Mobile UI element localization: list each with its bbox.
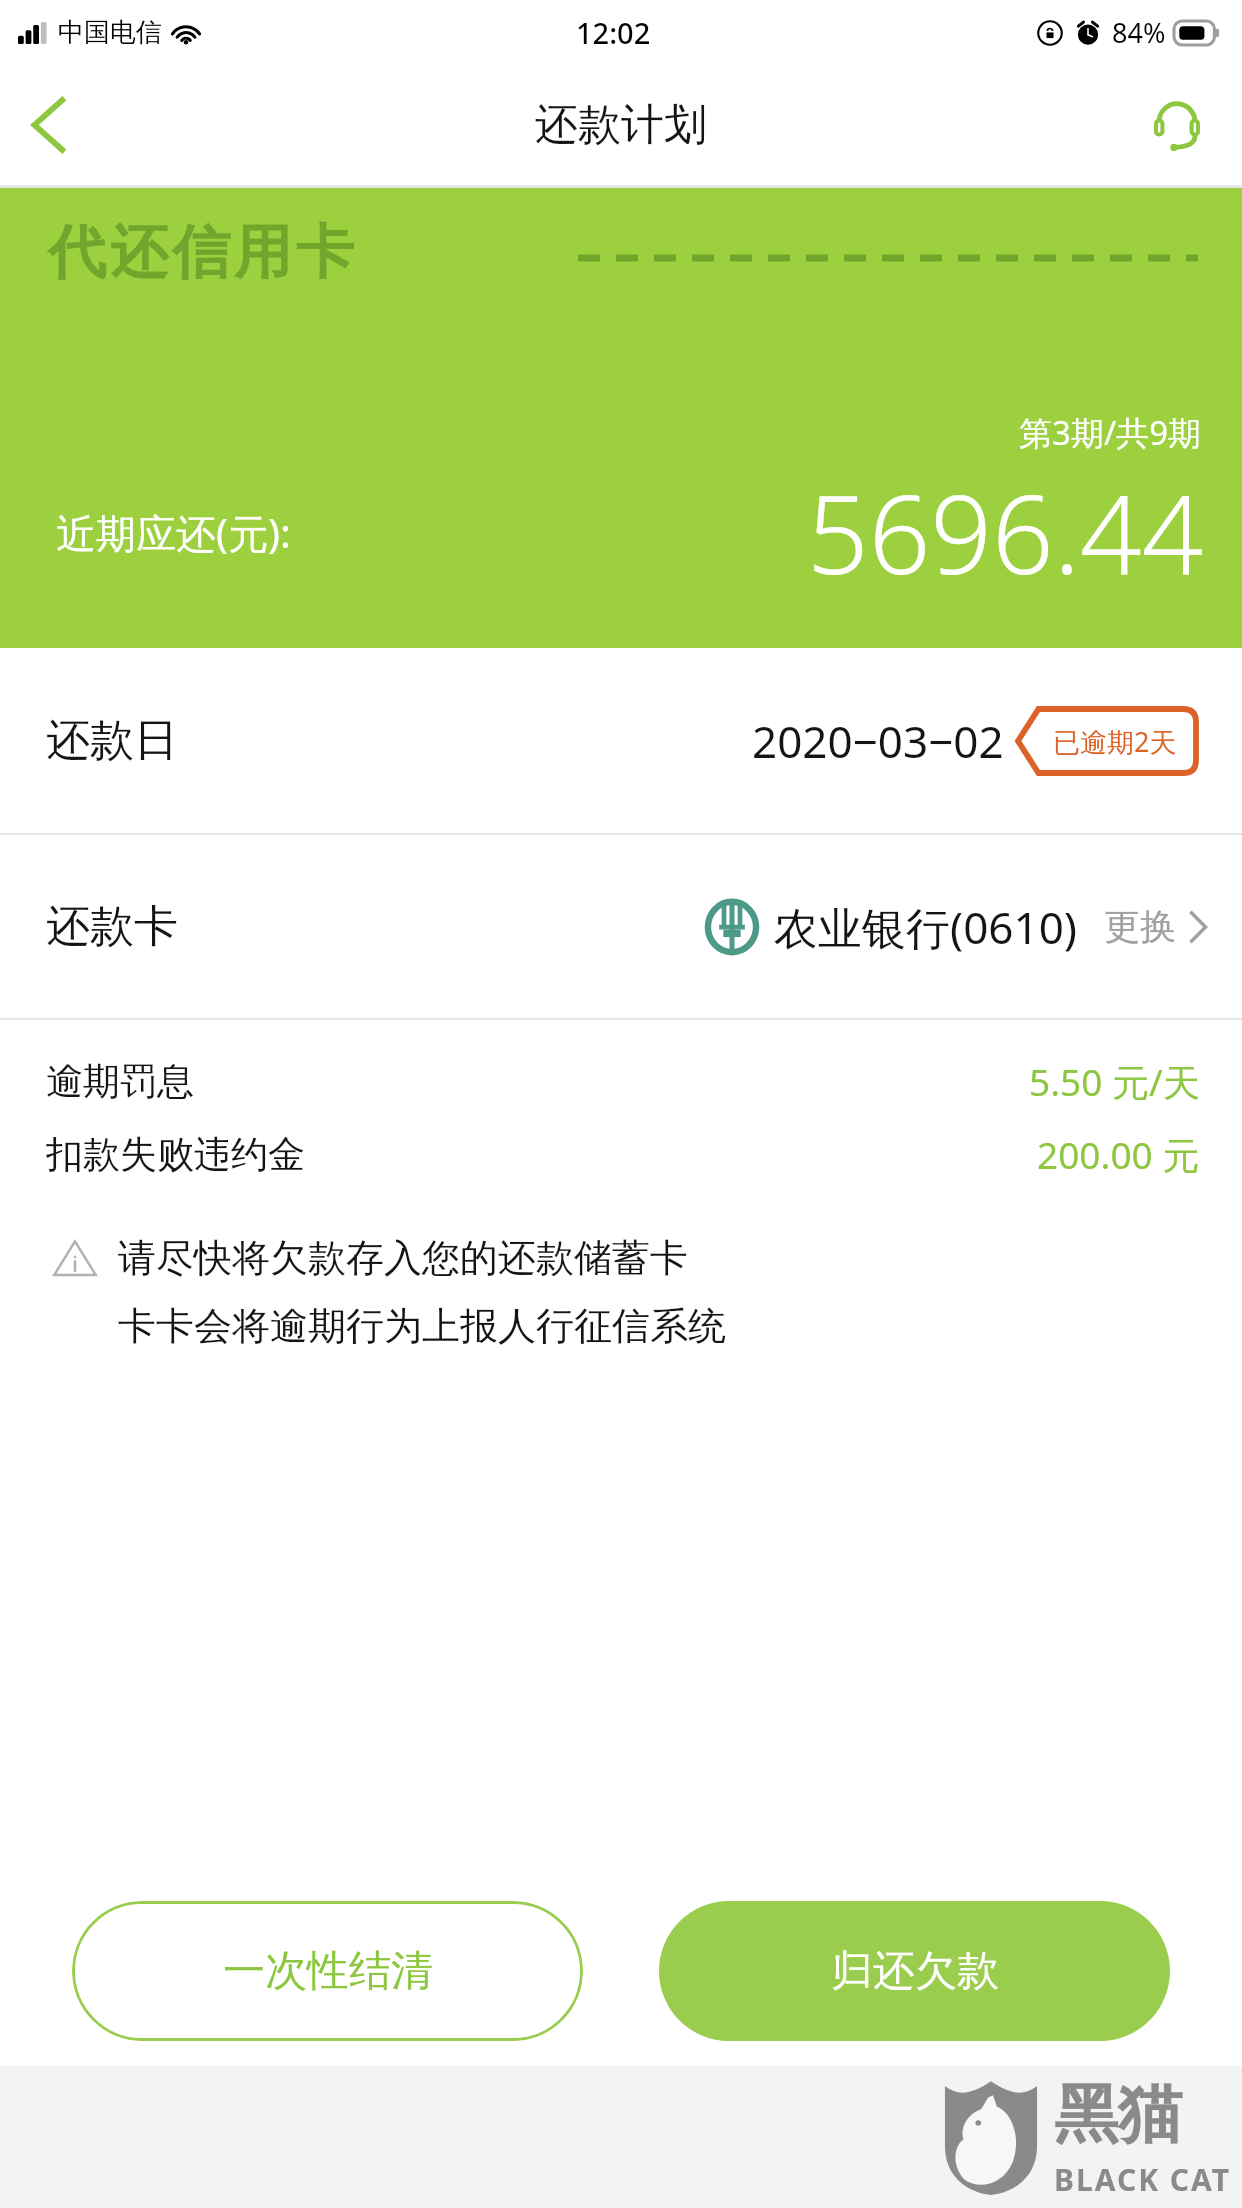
staticText: 5696.44 <box>807 459 1204 606</box>
staticText: 第3期/共9期 <box>1019 410 1202 455</box>
staticText: 扣款失败违约金 <box>46 1131 305 1178</box>
staticText: 已逾期2天 <box>1053 723 1177 760</box>
staticText: 还款计划 <box>535 98 707 152</box>
staticText: 归还欠款 <box>831 1945 999 1998</box>
staticText: 2020−03−02 <box>752 711 1004 771</box>
staticText: 一次性结清 <box>223 1945 433 1998</box>
button[interactable]: 一次性结清 <box>72 1901 583 2041</box>
staticText: 黑猫 <box>1054 2074 1182 2155</box>
staticText: 5.50 元/天 <box>1029 1056 1200 1107</box>
button[interactable]: 归还欠款 <box>659 1901 1170 2041</box>
staticText: 卡卡会将逾期行为上报人行征信系统 <box>118 1302 726 1350</box>
staticText: 还款卡 <box>46 899 178 954</box>
button[interactable]: 还款卡 <box>0 835 1242 1018</box>
staticText: 近期应还(元): <box>56 505 291 560</box>
staticText: 农业银行(0610) <box>774 897 1078 957</box>
staticText: 84% <box>1112 14 1166 51</box>
button[interactable]: Customer service <box>1140 88 1214 162</box>
staticText: 200.00 元 <box>1037 1129 1200 1180</box>
staticText: 请尽快将欠款存入您的还款储蓄卡 <box>118 1234 688 1282</box>
button[interactable]: Back <box>0 77 96 173</box>
staticText: 中国电信 <box>58 16 162 49</box>
staticText: BLACK CAT <box>1054 2159 1232 2200</box>
staticText: 更换 <box>1104 904 1176 949</box>
staticText: 代还信用卡 <box>46 216 356 289</box>
staticText: 还款日 <box>46 713 178 768</box>
button[interactable]: 还款日 <box>0 648 1242 833</box>
staticText: 逾期罚息 <box>46 1058 194 1105</box>
staticText: 12:02 <box>576 13 651 52</box>
